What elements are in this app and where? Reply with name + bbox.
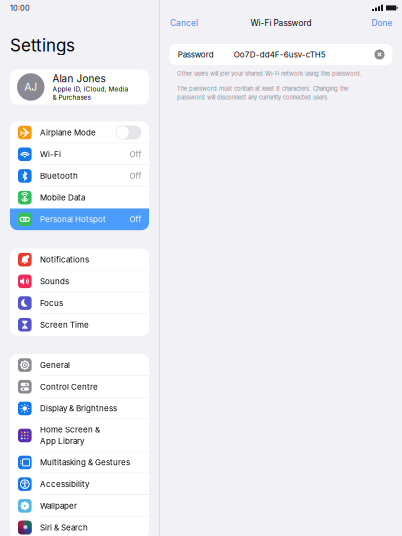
staticText: General: [40, 360, 70, 370]
button[interactable]: Done: [365, 15, 402, 31]
button[interactable]: Clear password: [374, 49, 384, 59]
button[interactable]: Airplane Mode: [10, 122, 149, 143]
staticText: & Purchases: [52, 93, 90, 101]
staticText: Notifications: [40, 255, 89, 264]
staticText: The password must contain at least 8 cha…: [177, 85, 348, 92]
staticText: Cancel: [170, 18, 198, 28]
staticText: Personal Hotspot: [40, 214, 106, 224]
button[interactable]: Control Centre: [10, 376, 149, 398]
button[interactable]: Mobile Data: [10, 187, 149, 208]
button[interactable]: AJ: [10, 69, 149, 104]
staticText: Done: [371, 18, 392, 28]
button[interactable]: Screen Time: [10, 314, 149, 336]
staticText: Oo7D-dd4F-6usv-cTH5: [234, 50, 326, 59]
staticText: 10:00: [10, 3, 30, 12]
staticText: Accessibility: [40, 479, 89, 489]
button[interactable]: General: [10, 354, 149, 376]
staticText: Mobile Data: [40, 193, 85, 202]
button[interactable]: Siri & Search: [10, 517, 149, 536]
staticText: Wi-Fi Password: [250, 18, 311, 28]
staticText: Password: [178, 50, 214, 59]
staticText: Off: [129, 214, 141, 224]
button[interactable]: Wallpaper: [10, 495, 149, 517]
staticText: Apple ID, iCloud, Media: [52, 85, 128, 93]
staticText: Multitasking & Gestures: [40, 458, 130, 467]
staticText: Screen Time: [40, 320, 89, 330]
button[interactable]: Personal Hotspot: [10, 208, 149, 230]
button[interactable]: Multitasking & Gestures: [10, 452, 149, 473]
button[interactable]: Focus: [10, 292, 149, 314]
staticText: Home Screen &: [40, 425, 100, 435]
staticText: Sounds: [40, 276, 69, 286]
staticText: Siri & Search: [40, 523, 88, 532]
staticText: Alan Jones: [52, 73, 105, 85]
button[interactable]: Notifications: [10, 249, 149, 270]
staticText: Wallpaper: [40, 501, 77, 511]
button[interactable]: Bluetooth: [10, 165, 149, 187]
staticText: Bluetooth: [40, 171, 78, 181]
staticText: Off: [129, 171, 141, 181]
button[interactable]: Cancel: [160, 15, 204, 31]
staticText: Display & Brightness: [40, 404, 117, 413]
button[interactable]: Accessibility: [10, 473, 149, 495]
staticText: AJ: [24, 81, 37, 93]
staticText: Focus: [40, 298, 63, 308]
staticText: Control Centre: [40, 382, 98, 392]
staticText: Other users will join your shared Wi-Fi …: [177, 70, 362, 77]
button[interactable]: Home Screen &: [10, 419, 149, 452]
staticText: Settings: [10, 35, 75, 55]
button[interactable]: Wi-Fi: [10, 143, 149, 165]
button[interactable]: Sounds: [10, 270, 149, 292]
button[interactable]: Display & Brightness: [10, 398, 149, 419]
staticText: Wi-Fi: [40, 149, 61, 159]
staticText: Off: [129, 149, 141, 159]
staticText: App Library: [40, 436, 84, 446]
staticText: password will disconnect any currently c…: [177, 94, 329, 101]
staticText: Airplane Mode: [40, 128, 96, 137]
